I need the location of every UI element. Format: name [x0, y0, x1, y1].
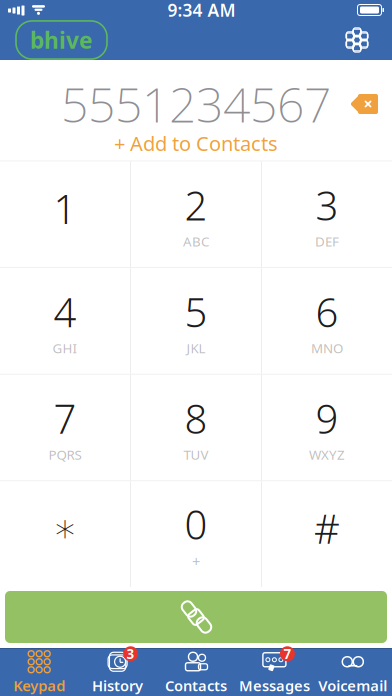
staticText: 4 — [53, 285, 76, 338]
staticText: JKL — [186, 339, 205, 357]
staticText: MNO — [311, 339, 343, 357]
button[interactable]: 7 — [235, 647, 314, 696]
staticText: 3 — [127, 645, 135, 663]
button[interactable]: bhive — [16, 21, 107, 59]
button[interactable]: Keypad — [0, 647, 78, 696]
staticText: + Add to Contacts — [114, 130, 278, 157]
staticText: 7 — [53, 392, 76, 445]
button[interactable]: 6 — [262, 268, 392, 374]
staticText: WXYZ — [309, 446, 345, 463]
staticText: 8 — [184, 392, 207, 445]
button[interactable]: Voicemail — [314, 647, 392, 696]
staticText: TUV — [183, 446, 208, 463]
staticText: 1 — [53, 182, 76, 235]
staticText: 5 — [184, 285, 207, 338]
button[interactable]: 9 — [262, 375, 392, 480]
button[interactable]: 2 — [131, 162, 261, 267]
staticText: 3 — [315, 178, 338, 232]
button[interactable]: 7 — [0, 375, 130, 480]
staticText: Messages — [239, 676, 310, 695]
staticText: GHI — [52, 339, 77, 357]
button[interactable]: ∗ — [0, 481, 130, 587]
staticText: + — [192, 551, 200, 571]
staticText: History — [92, 676, 143, 695]
staticText: 9 — [315, 392, 338, 445]
staticText: ∗ — [52, 505, 77, 551]
staticText: bhive — [30, 25, 93, 55]
staticText: 7 — [283, 645, 291, 663]
staticText: PQRS — [48, 446, 81, 463]
staticText: Contacts — [165, 676, 227, 695]
button[interactable]: 4 — [0, 268, 130, 374]
staticText: 0 — [184, 497, 207, 550]
staticText: Voicemail — [318, 676, 387, 695]
staticText: Keypad — [13, 676, 65, 695]
button[interactable]: 0 — [131, 481, 261, 587]
staticText: 9:34 AM — [167, 0, 235, 21]
button[interactable]: Delete — [348, 92, 380, 116]
button[interactable]: 3 — [262, 162, 392, 267]
button[interactable]: Contacts — [157, 647, 235, 696]
staticText: 2 — [184, 178, 207, 232]
staticText: # — [314, 502, 340, 555]
button[interactable]: 5 — [131, 268, 261, 374]
button[interactable]: + Add to Contacts — [104, 126, 288, 161]
button[interactable]: Honeycomb menu — [338, 25, 376, 55]
button[interactable]: 1 — [0, 162, 130, 267]
staticText: 6 — [315, 285, 338, 338]
button[interactable]: Call — [5, 591, 387, 643]
button[interactable]: 3 — [78, 647, 157, 696]
staticText: ABC — [183, 233, 209, 250]
button[interactable]: # — [262, 481, 392, 587]
button[interactable]: 8 — [131, 375, 261, 480]
staticText: 5551234567 — [61, 72, 331, 136]
staticText: DEF — [315, 233, 339, 250]
